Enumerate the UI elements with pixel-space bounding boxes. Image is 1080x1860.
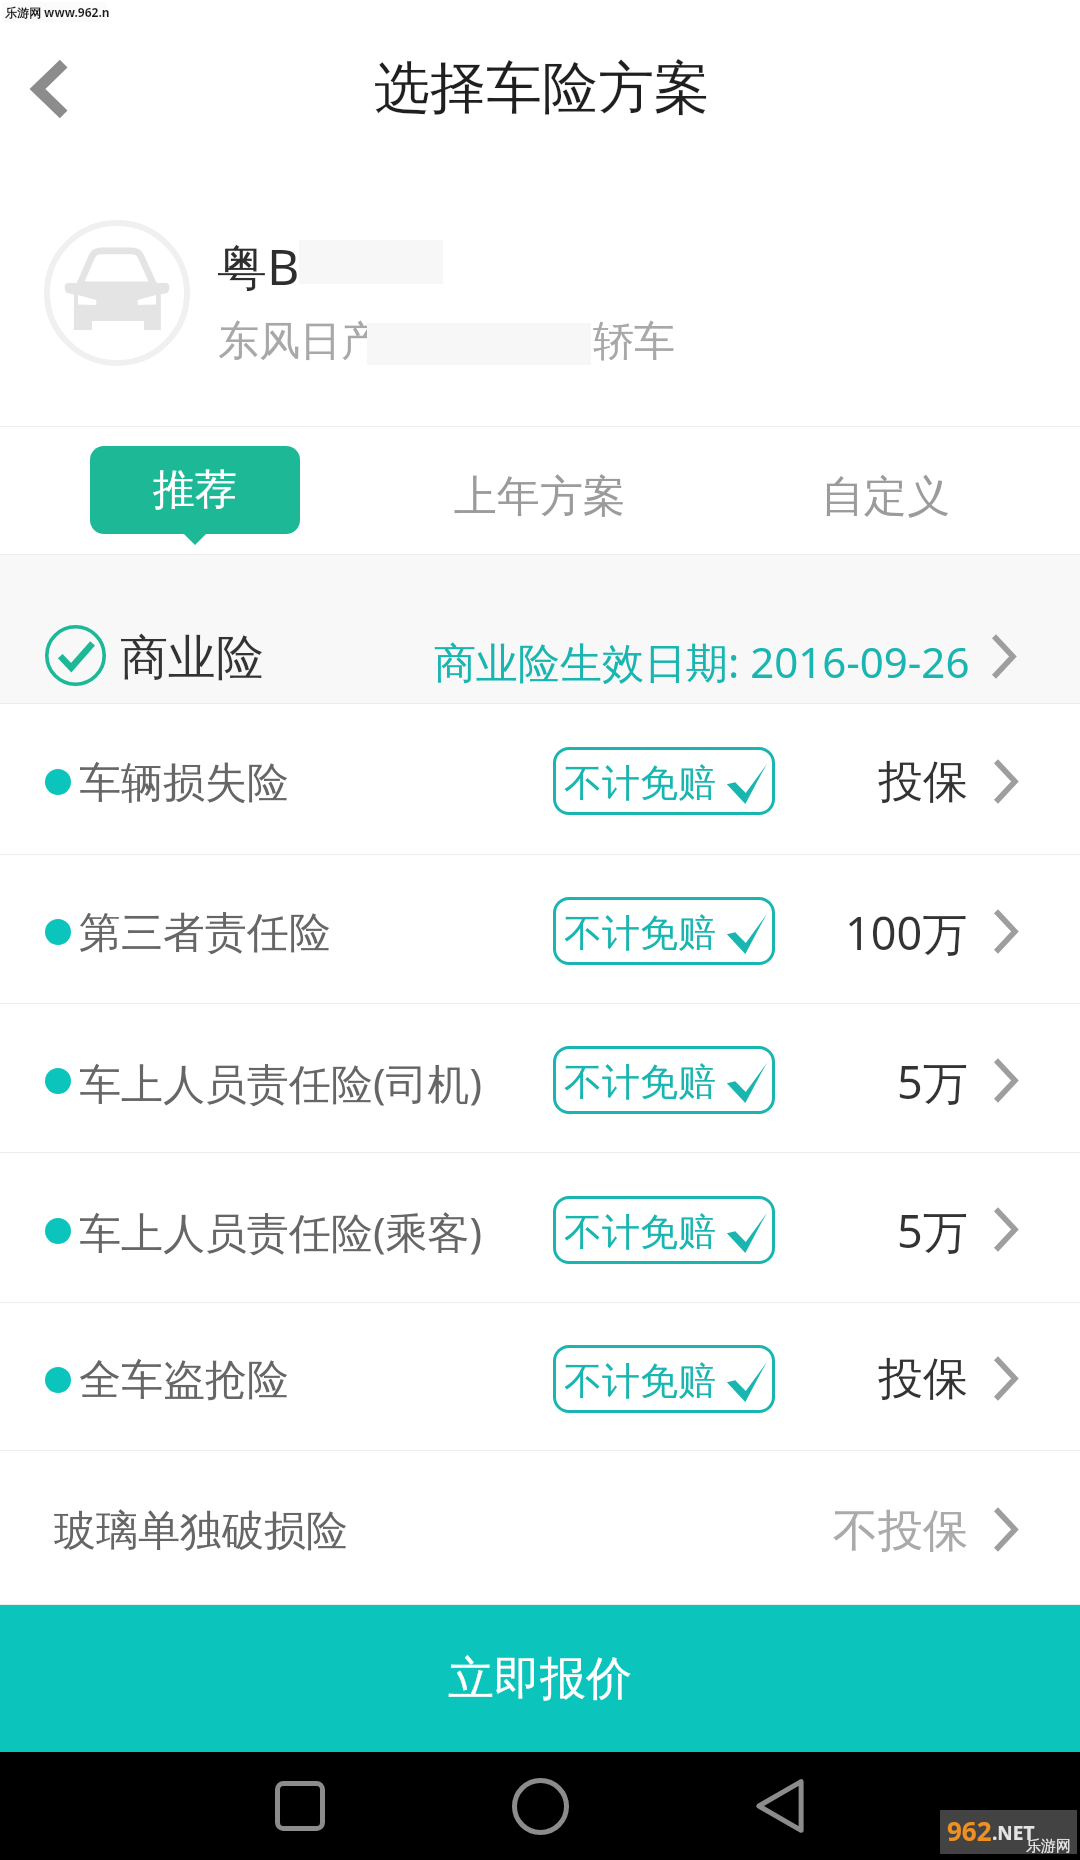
staticText: 上年方案	[454, 470, 626, 524]
staticText: 5万	[897, 1051, 968, 1112]
staticText: 立即报价	[448, 1650, 632, 1708]
staticText: 车上人员责任险(乘客)	[79, 1203, 483, 1260]
staticText: 车上人员责任险(司机)	[79, 1054, 483, 1111]
button[interactable]: Back	[0, 33, 100, 143]
staticText: 不计免赔	[564, 759, 716, 807]
staticText: 不计免赔	[564, 1058, 716, 1106]
button[interactable]: Home	[460, 1752, 620, 1860]
staticText: 乐游网	[1026, 1837, 1071, 1856]
staticText: 第三者责任险	[79, 907, 331, 960]
staticText: 乐游网 www.962.net	[5, 4, 109, 20]
staticText: 962	[947, 1813, 992, 1848]
staticText: 轿车	[593, 316, 675, 368]
staticText: 商业险生效日期: 2016-09-26	[434, 633, 970, 690]
staticText: 玻璃单独破损险	[54, 1505, 348, 1558]
staticText: 100万	[845, 902, 968, 963]
staticText: 东风日产	[218, 316, 382, 368]
staticText: 不计免赔	[564, 909, 716, 957]
staticText: 不计免赔	[564, 1208, 716, 1256]
staticText: 自定义	[821, 470, 950, 524]
staticText: 选择车险方案	[374, 53, 710, 124]
button[interactable]: Recent apps	[220, 1752, 380, 1860]
staticText: .NET	[992, 1820, 1035, 1846]
staticText: 推荐	[153, 464, 237, 517]
staticText: 全车盗抢险	[79, 1354, 289, 1407]
button[interactable]: 玻璃单独破损险	[0, 1451, 1080, 1599]
button[interactable]: 自定义	[760, 427, 1010, 554]
button[interactable]: 推荐	[90, 446, 300, 534]
button[interactable]: 上年方案	[370, 427, 710, 554]
staticText: 投保	[878, 754, 968, 811]
staticText: 投保	[878, 1351, 968, 1408]
staticText: 5万	[897, 1200, 968, 1261]
button[interactable]: 全车盗抢险	[0, 1303, 1080, 1450]
staticText: 车辆损失险	[79, 757, 289, 810]
staticText: 不计免赔	[564, 1357, 716, 1405]
button[interactable]: 商业险	[0, 555, 1080, 703]
staticText: 不投保	[833, 1503, 968, 1560]
staticText: 粤B	[217, 232, 300, 300]
button[interactable]: 车辆损失险	[0, 704, 1080, 854]
button[interactable]: Back	[700, 1752, 860, 1860]
button[interactable]: 第三者责任险	[0, 855, 1080, 1003]
button[interactable]: 车上人员责任险(司机)	[0, 1004, 1080, 1152]
button[interactable]: 车上人员责任险(乘客)	[0, 1153, 1080, 1302]
button[interactable]: 立即报价	[0, 1605, 1080, 1752]
staticText: 商业险	[120, 628, 264, 688]
